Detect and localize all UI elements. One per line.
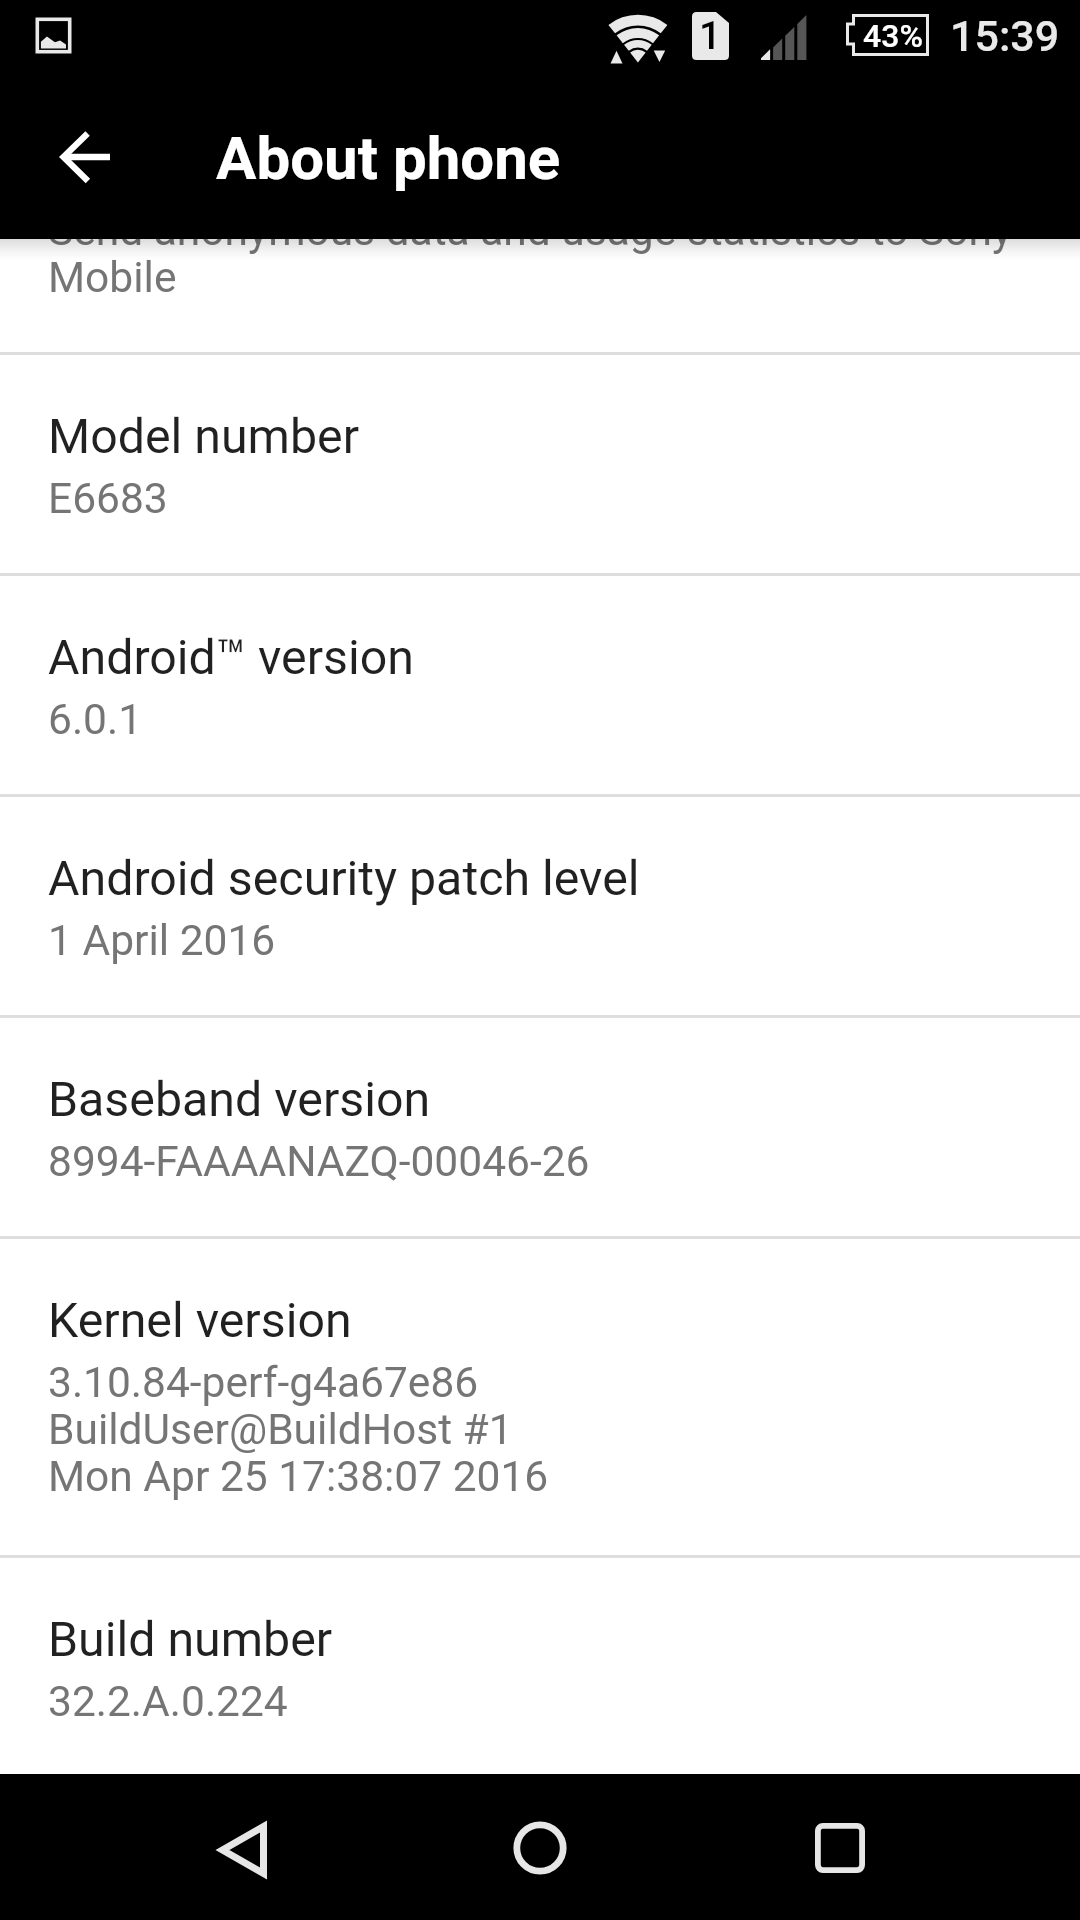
staticText: Baseband version [48,1072,431,1128]
staticText: E6683 [48,476,168,523]
button[interactable]: Send anonymous data and usage statistics… [0,0,1080,353]
staticText: 43% [863,17,923,55]
staticText: Kernel version [48,1293,352,1349]
staticText: 6.0.1 [48,697,143,744]
button[interactable]: Build number [0,1556,1080,1777]
button[interactable]: Model number [0,353,1080,574]
button[interactable]: Android security patch level [0,795,1080,1016]
staticText: Android security patch level [48,851,640,907]
staticText: Send anonymous data and usage statistics… [48,208,1013,302]
button[interactable]: Recent apps [760,1774,920,1920]
staticText: Android™ version [48,630,414,686]
button[interactable]: Home [460,1774,620,1920]
staticText: 15:39 [950,11,1060,61]
button[interactable]: Kernel version [0,1237,1080,1458]
button[interactable]: Baseband version [0,1016,1080,1237]
staticText: Model number [48,409,360,465]
staticText: Build number [48,1612,333,1668]
button[interactable]: Android™ version [0,574,1080,795]
staticText: 1 [699,13,722,59]
button[interactable]: Back [160,1774,320,1920]
staticText: 1 April 2016 [48,918,276,965]
staticText: About phone [216,123,561,193]
staticText: 8994-FAAAANAZQ-00046-26 [48,1139,590,1186]
button[interactable]: Navigate up [12,78,156,239]
staticText: 3.10.84-perf-g4a67e86 BuildUser@BuildHos… [48,1360,549,1501]
staticText: 32.2.A.0.224 [48,1679,288,1726]
